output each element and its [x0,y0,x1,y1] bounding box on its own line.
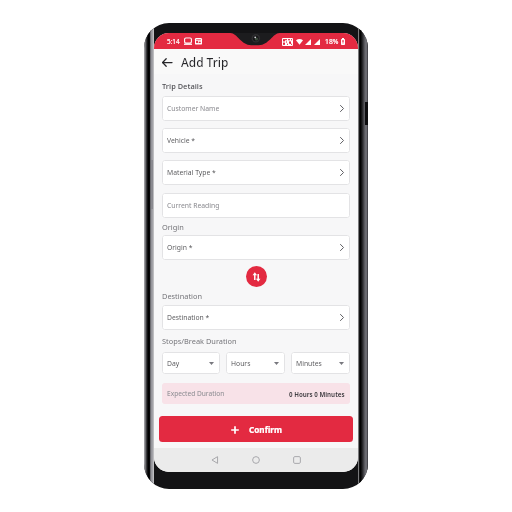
staticText: 0 Hours 0 Minutes [289,390,345,398]
button[interactable]: Destination * [162,305,350,330]
staticText: Hours [231,359,251,368]
staticText: Day [167,359,180,368]
button[interactable]: Recents [290,453,304,467]
button[interactable]: Minutes [291,352,350,374]
button[interactable]: Material Type * [162,160,350,185]
staticText: Material Type * [167,168,216,177]
staticText: Vehicle * [167,136,196,145]
staticText: Origin [162,222,184,232]
button[interactable]: Customer Name [162,96,350,121]
staticText: Customer Name [167,104,220,113]
staticText: Expected Duration [167,389,225,398]
button[interactable]: Confirm [159,416,353,442]
button[interactable]: Origin * [162,235,350,260]
button[interactable]: Back [159,54,175,70]
button[interactable]: Home [249,453,263,467]
staticText: Trip Details [162,81,203,91]
staticText: Confirm [249,424,282,435]
staticText: Add Trip [181,54,229,70]
button[interactable]: Current Reading [162,193,350,218]
staticText: Minutes [296,359,322,368]
staticText: 5:14 [167,37,180,46]
button[interactable]: Swap origin and destination [246,266,267,287]
staticText: Destination * [167,313,210,322]
staticText: Current Reading [167,201,220,210]
button[interactable]: Hours [226,352,285,374]
button[interactable]: Back [208,453,222,467]
staticText: Stops/Break Duration [162,336,237,346]
staticText: 18% [325,37,339,46]
staticText: Destination [162,291,203,301]
staticText: Origin * [167,243,193,252]
button[interactable]: Day [162,352,220,374]
button[interactable]: Vehicle * [162,128,350,153]
